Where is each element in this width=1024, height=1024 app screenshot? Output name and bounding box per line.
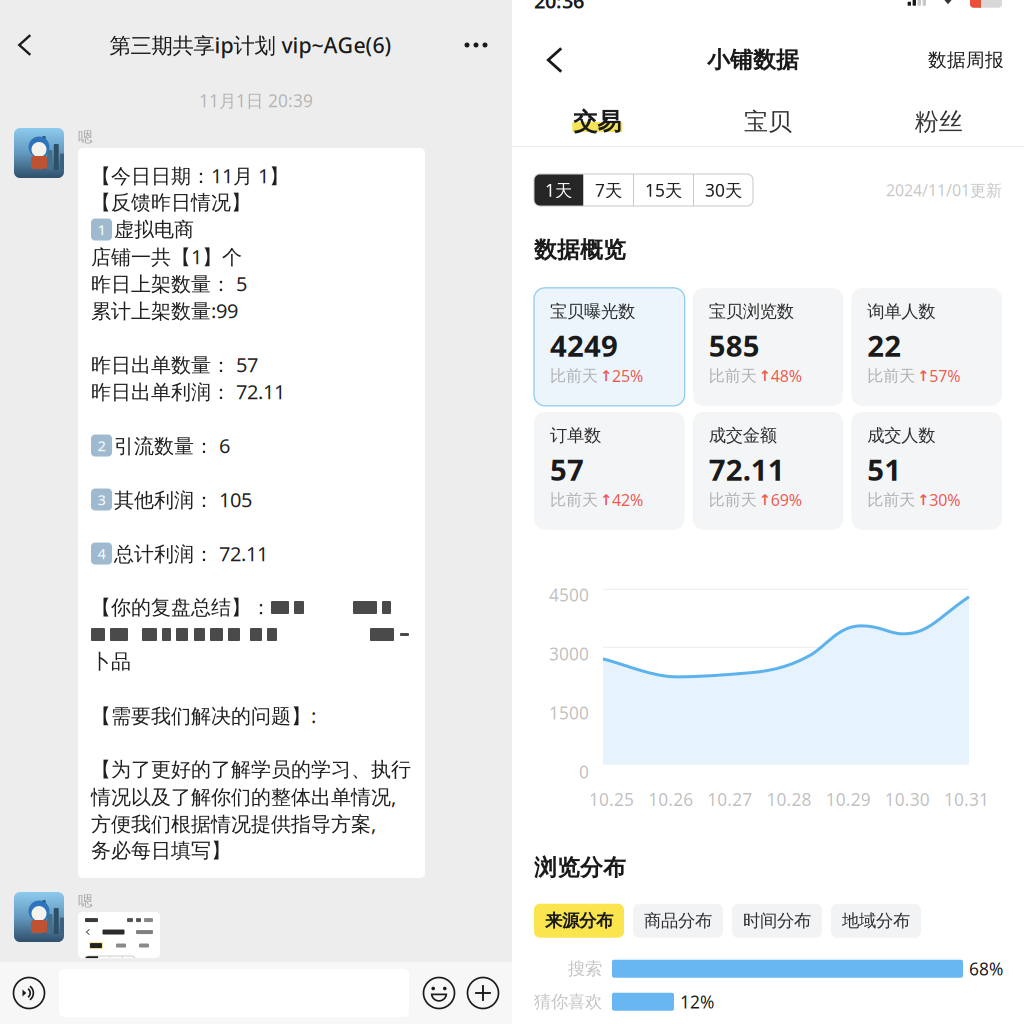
- staticText: 询单人数: [867, 301, 935, 322]
- button[interactable]: 地域分布: [831, 904, 921, 938]
- staticText: 4: [97, 544, 105, 563]
- button[interactable]: 7天: [584, 174, 633, 206]
- button[interactable]: 粉丝: [853, 106, 1024, 146]
- button[interactable]: Back: [532, 14, 578, 106]
- staticText: 宝贝曝光数: [550, 301, 635, 322]
- staticText: 3000: [549, 642, 589, 665]
- staticText: 猜你喜欢: [534, 991, 602, 1012]
- staticText: 时间分布: [743, 910, 811, 931]
- staticText: 交易: [573, 107, 621, 136]
- button[interactable]: 订单数: [534, 412, 685, 530]
- staticText: 宝贝浏览数: [709, 301, 794, 322]
- staticText: 2: [97, 436, 105, 455]
- staticText: 成交人数: [867, 425, 935, 446]
- button[interactable]: 宝贝浏览数: [693, 288, 843, 406]
- staticText: 51: [867, 450, 901, 489]
- button[interactable]: 来源分布: [534, 904, 624, 938]
- staticText: 成交金额: [709, 425, 777, 446]
- button[interactable]: 宝贝曝光数: [534, 288, 685, 406]
- staticText: ↑: [917, 367, 929, 384]
- staticText: 卜品: [91, 649, 131, 674]
- staticText: 【今日日期：11月 1】: [91, 162, 289, 189]
- button[interactable]: 时间分布: [732, 904, 822, 938]
- staticText: 57%: [929, 365, 960, 386]
- staticText: 585: [709, 326, 760, 365]
- staticText: 68%: [969, 957, 1003, 980]
- staticText: 【你的复盘总结】：: [91, 595, 271, 620]
- staticText: 22: [867, 326, 901, 365]
- staticText: 1500: [549, 701, 589, 724]
- staticText: 3: [97, 490, 105, 509]
- staticText: 总计利润： 72.11: [114, 540, 268, 567]
- staticText: 数据概览: [534, 236, 626, 264]
- staticText: 48%: [771, 365, 802, 386]
- staticText: 引流数量： 6: [114, 432, 230, 459]
- button[interactable]: 30天: [694, 174, 753, 206]
- staticText: 12%: [680, 990, 714, 1013]
- button[interactable]: More: [454, 24, 498, 66]
- staticText: ↑: [759, 367, 771, 384]
- staticText: 69%: [771, 489, 802, 510]
- staticText: 10.30: [885, 788, 930, 811]
- staticText: 情况以及了解你们的整体出单情况,: [91, 783, 396, 810]
- staticText: 比前天: [550, 490, 598, 510]
- button[interactable]: 成交人数: [851, 412, 1002, 530]
- staticText: 比前天: [709, 366, 757, 386]
- button[interactable]: 商品分布: [633, 904, 723, 938]
- button[interactable]: 数据周报: [928, 14, 1004, 106]
- staticText: ↑: [600, 491, 612, 508]
- staticText: 地域分布: [842, 910, 910, 931]
- button[interactable]: 宝贝: [683, 106, 853, 146]
- staticText: ↑: [759, 491, 771, 508]
- staticText: 20:36: [534, 0, 584, 14]
- button[interactable]: Voice message: [7, 965, 51, 1021]
- staticText: 务必每日填写】: [91, 838, 231, 863]
- staticText: 25%: [612, 365, 643, 386]
- staticText: 11月1日 20:39: [199, 89, 313, 112]
- staticText: 10.29: [826, 788, 871, 811]
- button[interactable]: 成交金额: [693, 412, 843, 530]
- staticText: 30%: [929, 489, 960, 510]
- staticText: 虚拟电商: [114, 217, 194, 242]
- staticText: ↑: [917, 491, 929, 508]
- staticText: 小铺数据: [707, 46, 799, 74]
- button[interactable]: Emoji: [417, 965, 461, 1021]
- staticText: 【反馈昨日情况】: [91, 190, 251, 215]
- staticText: 0: [579, 760, 589, 783]
- staticText: 其他利润： 105: [114, 486, 252, 513]
- staticText: 商品分布: [644, 910, 712, 931]
- staticText: 10.25: [589, 788, 634, 811]
- staticText: 数据周报: [928, 48, 1004, 71]
- staticText: 浏览分布: [534, 854, 626, 882]
- staticText: 粉丝: [915, 107, 963, 136]
- staticText: 比前天: [709, 490, 757, 510]
- staticText: 1天: [545, 178, 572, 201]
- staticText: 店铺一共【1】个: [91, 243, 242, 270]
- staticText: 10.26: [648, 788, 693, 811]
- staticText: 方便我们根据情况提供指导方案,: [91, 810, 376, 837]
- staticText: 42%: [612, 489, 643, 510]
- staticText: 昨日出单数量： 57: [91, 351, 258, 378]
- button[interactable]: More options: [461, 965, 505, 1021]
- staticText: 4249: [550, 326, 618, 365]
- staticText: 10.28: [766, 788, 811, 811]
- staticText: 1: [97, 220, 105, 239]
- staticText: 【为了更好的了解学员的学习、执行: [91, 757, 411, 782]
- button[interactable]: 交易: [512, 106, 683, 146]
- staticText: 比前天: [867, 490, 915, 510]
- button[interactable]: Back: [3, 24, 47, 66]
- button[interactable]: 1天: [534, 174, 583, 206]
- staticText: 第三期共享ip计划 vip~AGe(6): [109, 31, 391, 59]
- staticText: 10.27: [707, 788, 752, 811]
- staticText: 来源分布: [545, 910, 613, 931]
- staticText: 昨日上架数量： 5: [91, 270, 247, 297]
- staticText: 7天: [595, 178, 622, 201]
- staticText: 4500: [549, 583, 589, 606]
- staticText: 15天: [645, 178, 682, 201]
- staticText: 30天: [705, 178, 742, 201]
- staticText: 宝贝: [744, 107, 792, 136]
- staticText: ↑: [600, 367, 612, 384]
- button[interactable]: 15天: [634, 174, 693, 206]
- button[interactable]: 询单人数: [851, 288, 1002, 406]
